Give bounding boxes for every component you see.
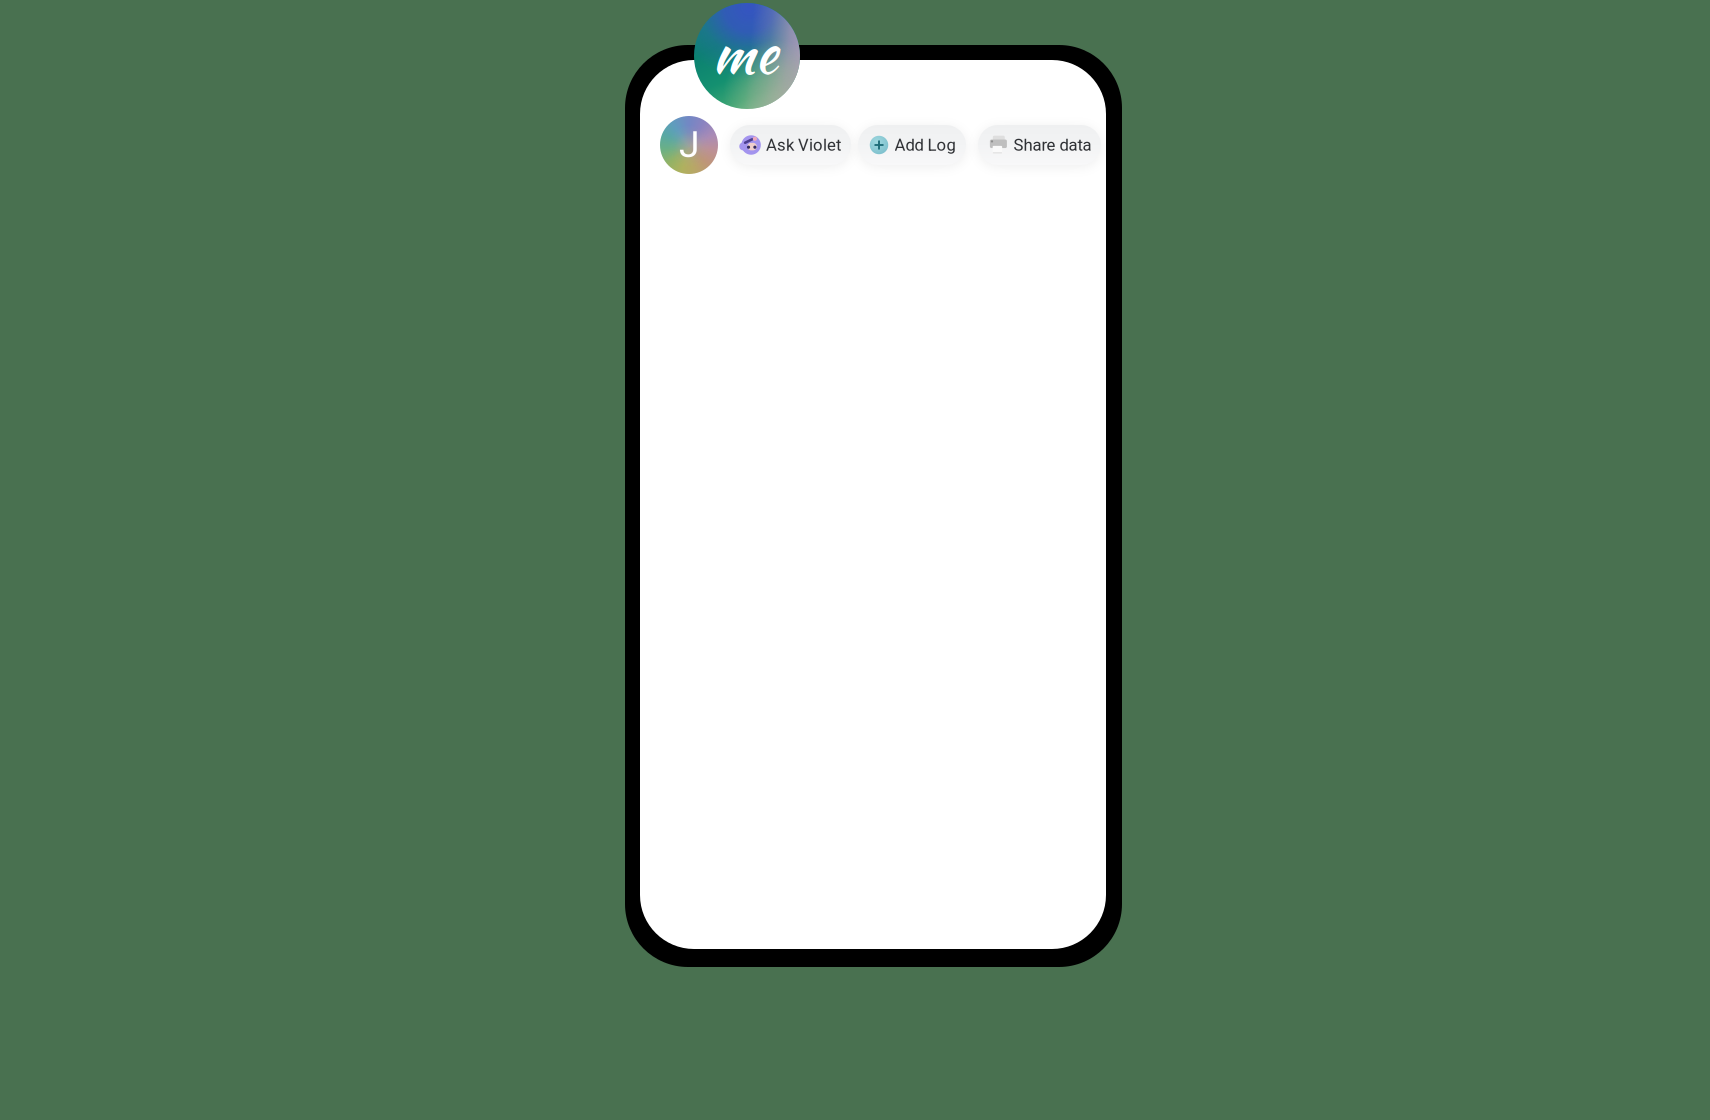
button[interactable]: Add Log (858, 125, 966, 165)
button[interactable]: Profile (660, 116, 718, 174)
button[interactable]: Ask Violet (730, 125, 851, 165)
staticText: Ask Violet (766, 135, 841, 155)
staticText: J (679, 123, 700, 166)
staticText: Share data (1013, 135, 1091, 155)
button[interactable]: Share data (978, 125, 1101, 165)
staticText: Add Log (894, 135, 955, 155)
staticText: me (712, 12, 778, 94)
